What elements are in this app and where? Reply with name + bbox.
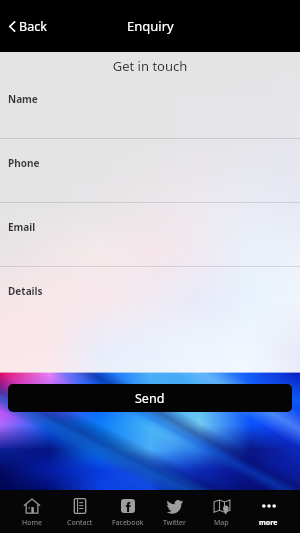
button[interactable]: Phone bbox=[0, 139, 300, 203]
button[interactable]: Name bbox=[0, 75, 300, 139]
button[interactable]: Home bbox=[8, 493, 56, 531]
button[interactable]: Contact bbox=[56, 493, 104, 531]
staticText: Home bbox=[22, 518, 42, 528]
button[interactable]: Send bbox=[8, 384, 292, 412]
staticText: Phone bbox=[8, 156, 40, 170]
staticText: Name bbox=[8, 92, 38, 106]
staticText: Twitter bbox=[163, 518, 186, 528]
button[interactable]: Details bbox=[0, 267, 300, 372]
staticText: Get in touch bbox=[0, 57, 300, 75]
staticText: Contact bbox=[67, 518, 93, 528]
staticText: Send bbox=[135, 390, 165, 407]
staticText: Back bbox=[19, 18, 47, 35]
staticText: Facebook bbox=[112, 518, 144, 528]
button[interactable]: Email bbox=[0, 203, 300, 267]
staticText: Email bbox=[8, 220, 36, 234]
button[interactable]: Back bbox=[7, 12, 49, 41]
button[interactable]: more bbox=[245, 493, 292, 531]
staticText: more bbox=[259, 518, 278, 528]
button[interactable]: Facebook bbox=[104, 493, 151, 531]
staticText: Details bbox=[8, 284, 43, 298]
button[interactable]: Twitter bbox=[151, 493, 198, 531]
staticText: Map bbox=[214, 518, 229, 528]
other: Back bbox=[9, 21, 16, 32]
button[interactable]: Map bbox=[198, 493, 245, 531]
staticText: Enquiry bbox=[127, 17, 174, 35]
